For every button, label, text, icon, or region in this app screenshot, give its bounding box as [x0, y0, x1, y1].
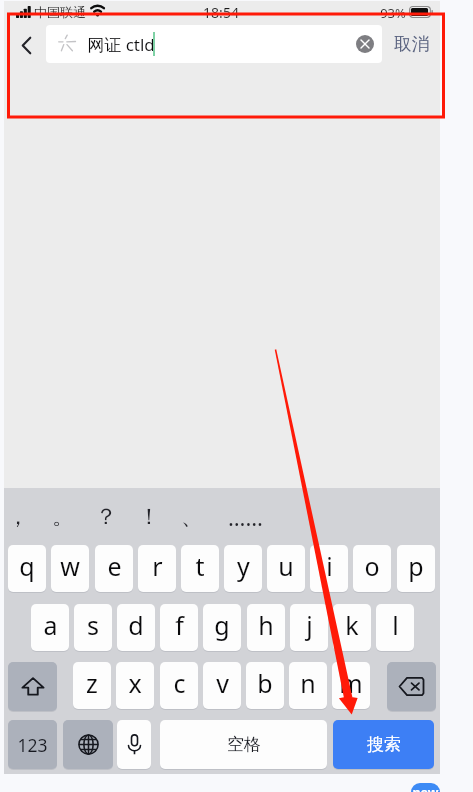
staticText: k [345, 608, 359, 642]
button[interactable]: h [247, 604, 285, 651]
staticText: ， [7, 503, 29, 531]
staticText: 18:54 [203, 3, 239, 22]
other: Backspace [399, 677, 424, 696]
button[interactable]: v [203, 662, 241, 709]
button[interactable]: y [224, 545, 262, 592]
button[interactable]: u [267, 545, 305, 592]
staticText: 、 [181, 503, 203, 531]
button[interactable]: Clear text [352, 31, 378, 57]
staticText: 空格 [227, 734, 261, 755]
staticText: 搜索 [367, 734, 401, 755]
button[interactable]: p [397, 545, 435, 592]
button[interactable]: Voice input [117, 720, 151, 769]
staticText: t [195, 549, 205, 583]
button[interactable]: q [8, 545, 46, 592]
staticText: 网证 ctld [87, 33, 155, 56]
staticText: 93% [380, 4, 406, 22]
button[interactable]: ？ [85, 501, 127, 533]
staticText: d [128, 608, 144, 642]
button[interactable]: Backspace [387, 662, 436, 711]
button[interactable]: x [116, 662, 154, 709]
button[interactable]: z [73, 662, 111, 709]
staticText: 。 [52, 503, 74, 531]
staticText: z [86, 666, 98, 700]
button[interactable]: 搜索 [333, 720, 434, 769]
staticText: f [175, 608, 184, 642]
button[interactable]: l [376, 604, 414, 651]
button[interactable]: 空格 [160, 720, 327, 769]
button[interactable]: s [74, 604, 112, 651]
button[interactable]: Back [8, 26, 44, 64]
staticText: v [216, 666, 229, 700]
staticText: 123 [17, 733, 48, 757]
staticText: g [214, 608, 230, 642]
staticText: c [173, 666, 186, 700]
button[interactable]: b [246, 662, 284, 709]
button[interactable]: i [310, 545, 348, 592]
staticText: x [128, 666, 142, 700]
staticText: n [300, 666, 316, 700]
button[interactable]: r [138, 545, 176, 592]
button[interactable]: new [411, 783, 440, 792]
button[interactable]: a [31, 604, 69, 651]
staticText: s [87, 608, 99, 642]
button[interactable]: f [160, 604, 198, 651]
button[interactable]: o [353, 545, 391, 592]
button[interactable]: 取消 [387, 26, 435, 62]
staticText: a [43, 608, 58, 642]
button[interactable]: g [203, 604, 241, 651]
button[interactable] [8, 662, 57, 711]
staticText: 中国联通 [34, 4, 86, 20]
staticText: m [339, 666, 363, 700]
button[interactable]: 123 [8, 720, 57, 769]
button[interactable]: e [95, 545, 133, 592]
staticText: w [60, 549, 80, 583]
staticText: j [306, 608, 313, 642]
button[interactable]: …… [224, 501, 266, 533]
button[interactable]: k [333, 604, 371, 651]
button[interactable]: ， [0, 501, 39, 533]
staticText: l [392, 608, 399, 642]
button[interactable]: w [51, 545, 89, 592]
other: Voice input [127, 734, 142, 755]
button[interactable]: 、 [171, 501, 213, 533]
staticText: 取消 [394, 33, 429, 55]
staticText: …… [228, 502, 263, 532]
staticText: ！ [138, 503, 160, 531]
staticText: o [364, 549, 380, 583]
button[interactable]: c [160, 662, 198, 709]
button[interactable]: m [332, 662, 370, 709]
staticText: i [326, 549, 333, 583]
staticText: e [107, 549, 122, 583]
button[interactable]: j [290, 604, 328, 651]
staticText: r [152, 549, 163, 583]
button[interactable]: 网证 ctld [46, 25, 382, 63]
button[interactable]: d [117, 604, 155, 651]
button[interactable]: t [181, 545, 219, 592]
staticText: y [237, 549, 250, 583]
staticText: b [257, 666, 273, 700]
staticText: h [258, 608, 274, 642]
button[interactable]: 。 [42, 501, 84, 533]
staticText: new [412, 784, 439, 792]
staticText: q [19, 549, 35, 583]
button[interactable]: n [289, 662, 327, 709]
button[interactable]: Switch language [63, 720, 113, 769]
button[interactable]: ！ [128, 501, 170, 533]
other: Switch language [78, 734, 99, 755]
staticText: p [408, 549, 424, 583]
staticText: u [278, 549, 294, 583]
staticText: ？ [95, 503, 117, 531]
